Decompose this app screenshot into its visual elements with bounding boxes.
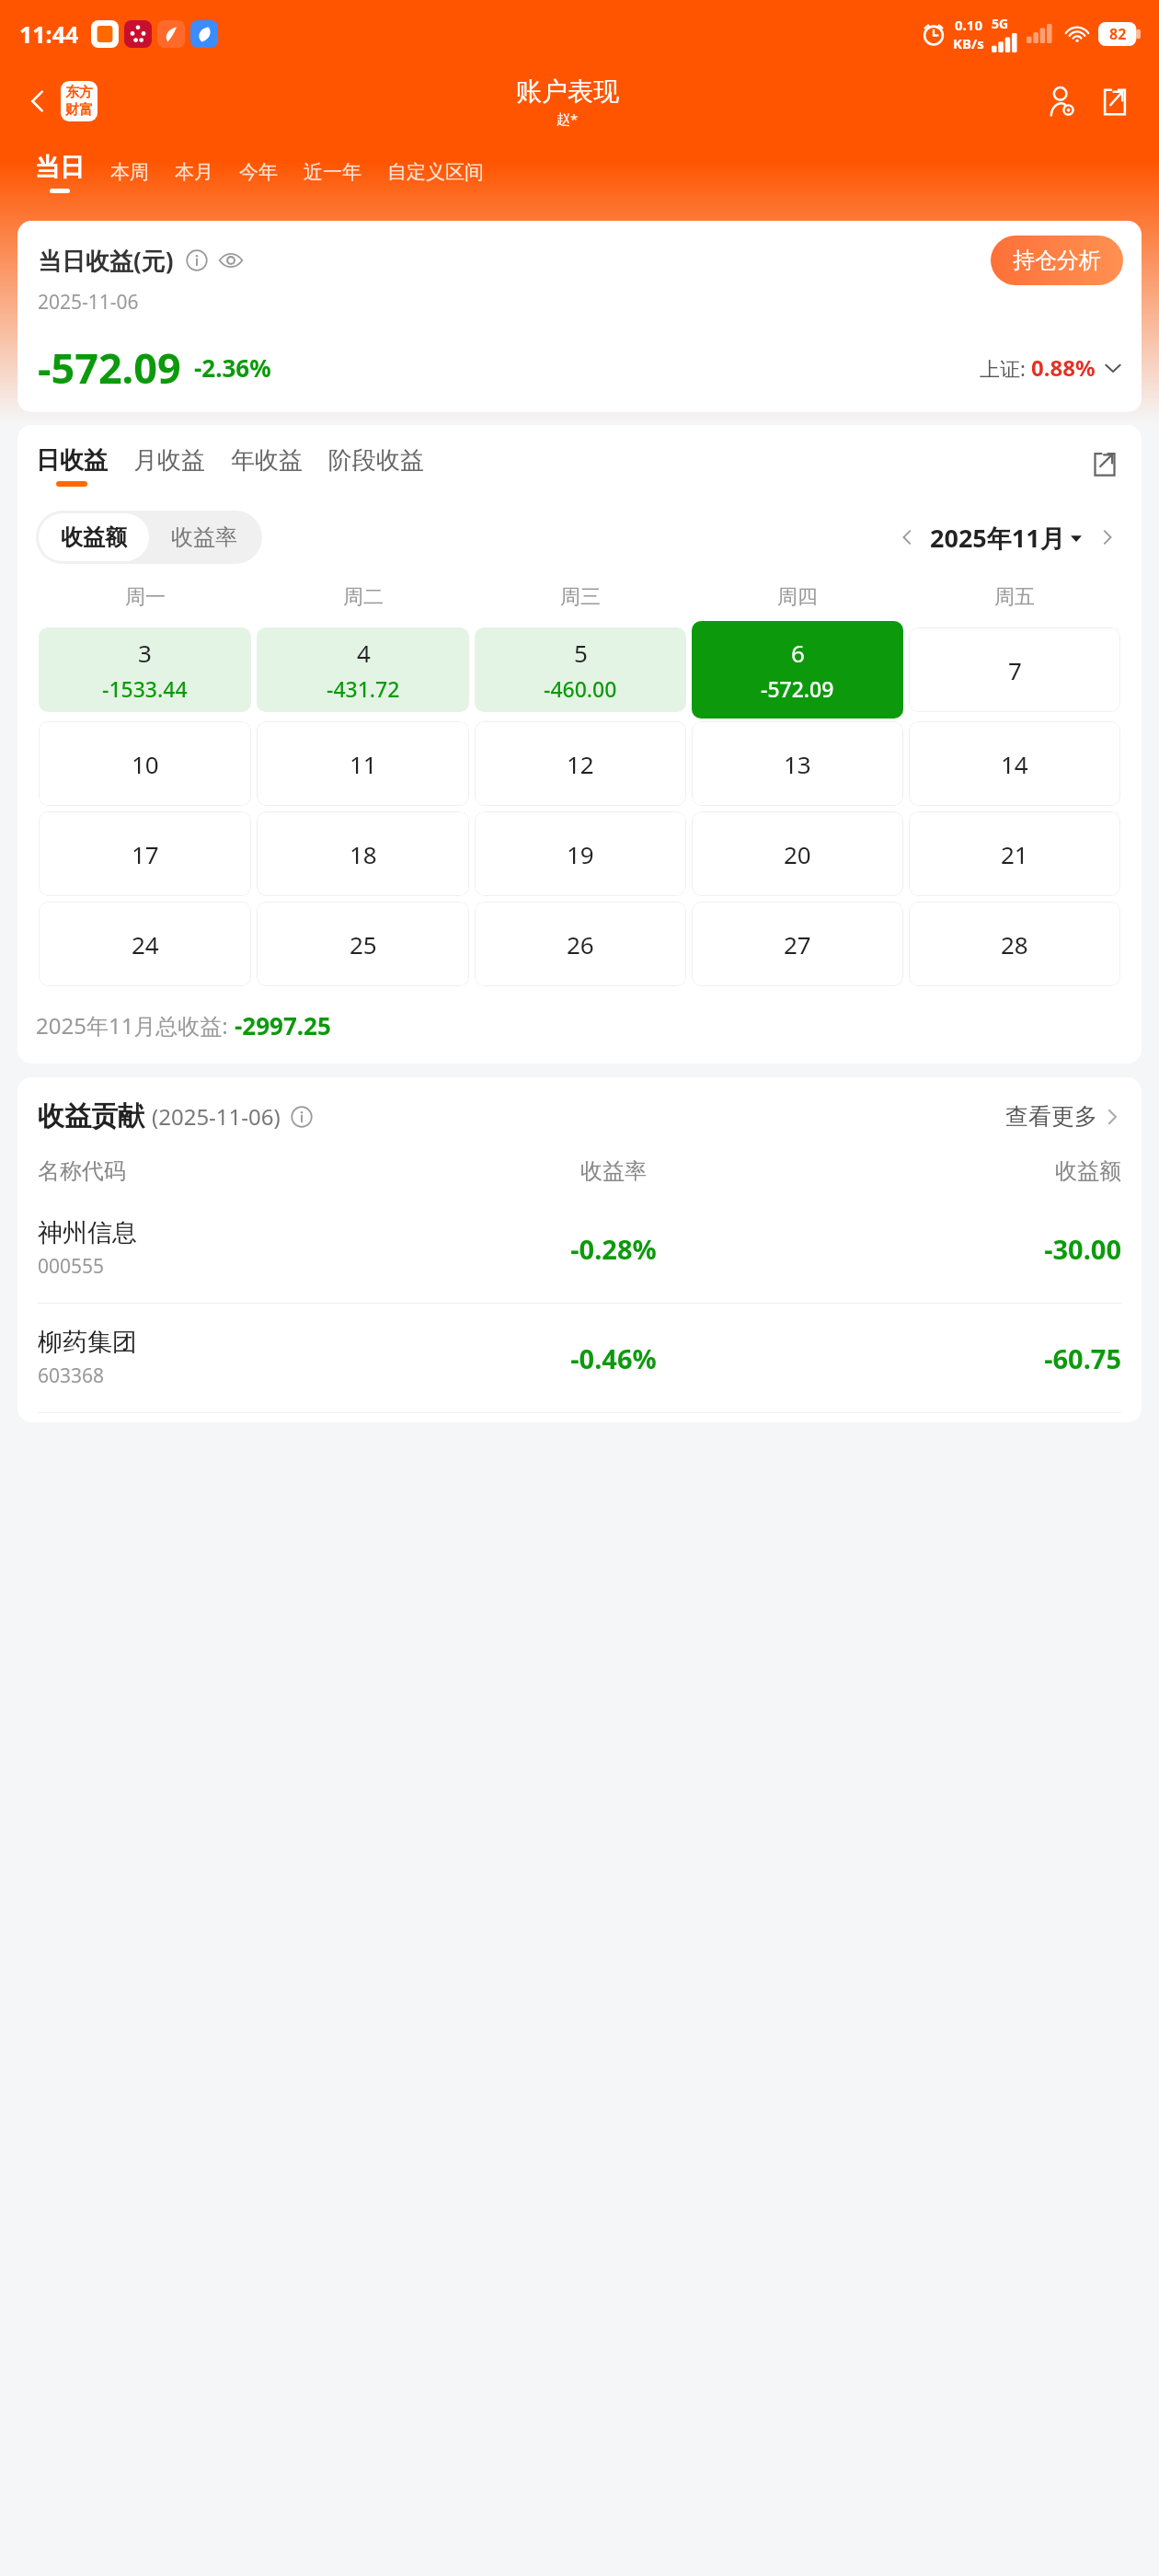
- staticText: 赵*: [557, 109, 579, 128]
- button[interactable]: Account: [1038, 77, 1085, 125]
- button[interactable]: 今年: [226, 160, 291, 184]
- staticText: -572.09: [761, 674, 834, 703]
- staticText: 东方: [65, 84, 93, 101]
- button[interactable]: Share: [1086, 445, 1123, 482]
- button[interactable]: Info: [183, 247, 211, 274]
- staticText: 0.10: [955, 16, 982, 34]
- staticText: KB/s: [953, 34, 984, 52]
- button[interactable]: 神州信息: [38, 1194, 1121, 1303]
- staticText: 周二: [343, 584, 384, 610]
- button[interactable]: 17: [39, 811, 251, 896]
- staticText: 12: [567, 748, 594, 780]
- button[interactable]: 10: [39, 721, 251, 806]
- staticText: 13: [784, 748, 811, 780]
- staticText: 82: [1109, 24, 1127, 44]
- button[interactable]: 27: [692, 902, 903, 986]
- button[interactable]: 18: [257, 811, 469, 896]
- button[interactable]: 月收益: [133, 445, 231, 481]
- staticText: 名称代码: [38, 1157, 444, 1185]
- staticText: 27: [784, 928, 811, 960]
- button[interactable]: 本周: [98, 160, 162, 184]
- staticText: -0.28%: [444, 1231, 783, 1267]
- staticText: 柳药集团: [38, 1327, 137, 1358]
- button[interactable]: 收益额: [39, 513, 149, 561]
- staticText: 19: [567, 838, 594, 870]
- staticText: 持仓分析: [1013, 247, 1101, 274]
- button[interactable]: 当日: [22, 152, 98, 193]
- button[interactable]: Info: [288, 1103, 316, 1131]
- button[interactable]: Toggle visibility: [216, 246, 246, 275]
- button[interactable]: 自定义区间: [374, 160, 497, 184]
- button[interactable]: 25: [257, 902, 469, 986]
- button[interactable]: 20: [692, 811, 903, 896]
- button[interactable]: 本月: [162, 160, 226, 184]
- button[interactable]: 26: [475, 902, 686, 986]
- staticText: 5: [574, 637, 588, 669]
- button[interactable]: 当日收益(元): [17, 221, 1142, 412]
- button[interactable]: 查看更多: [1005, 1102, 1121, 1131]
- button[interactable]: Share: [1091, 77, 1139, 125]
- staticText: 24: [132, 928, 159, 960]
- button[interactable]: 年收益: [231, 445, 328, 481]
- button[interactable]: 东方: [61, 81, 98, 121]
- staticText: -0.46%: [444, 1340, 783, 1376]
- button[interactable]: 6: [692, 621, 903, 719]
- button[interactable]: Next month: [1092, 522, 1123, 553]
- button[interactable]: 上证:: [980, 352, 1123, 383]
- staticText: 自定义区间: [387, 160, 484, 184]
- button[interactable]: 28: [909, 902, 1120, 986]
- staticText: 18: [350, 838, 377, 870]
- staticText: 14: [1001, 748, 1028, 780]
- button[interactable]: Back: [17, 80, 59, 122]
- staticText: 周一: [125, 584, 166, 610]
- staticText: 2025-11-06: [38, 289, 139, 316]
- staticText: 3: [138, 637, 152, 669]
- button[interactable]: 4: [257, 627, 469, 712]
- staticText: -460.00: [544, 674, 617, 703]
- staticText: 7: [1008, 654, 1022, 686]
- staticText: 账户表现: [516, 75, 619, 108]
- button[interactable]: 收益率: [149, 513, 259, 561]
- staticText: 收益贡献: [38, 1099, 144, 1133]
- staticText: 11:44: [19, 18, 79, 50]
- button[interactable]: 5: [475, 627, 686, 712]
- button[interactable]: 19: [475, 811, 686, 896]
- staticText: 查看更多: [1005, 1102, 1097, 1131]
- staticText: -431.72: [327, 674, 400, 703]
- staticText: 25: [350, 928, 377, 960]
- button[interactable]: Previous month: [891, 522, 923, 553]
- staticText: 10: [132, 748, 159, 780]
- staticText: 周四: [777, 584, 818, 610]
- button[interactable]: 柳药集团: [38, 1304, 1121, 1412]
- staticText: 17: [132, 838, 159, 870]
- staticText: 4: [357, 637, 371, 669]
- staticText: -30.00: [783, 1231, 1121, 1267]
- button[interactable]: 3: [39, 627, 251, 712]
- staticText: 28: [1001, 928, 1028, 960]
- button[interactable]: 阶段收益: [328, 445, 450, 481]
- button[interactable]: 日收益: [36, 445, 133, 487]
- button[interactable]: 12: [475, 721, 686, 806]
- staticText: 本月: [175, 160, 213, 184]
- staticText: 11: [350, 748, 377, 780]
- button[interactable]: 24: [39, 902, 251, 986]
- button[interactable]: 2025年11月: [930, 521, 1083, 555]
- staticText: 当日: [35, 152, 85, 183]
- staticText: 年收益: [231, 445, 303, 476]
- button[interactable]: 近一年: [291, 160, 374, 184]
- staticText: 6: [791, 637, 805, 669]
- staticText: 收益率: [171, 523, 237, 551]
- button[interactable]: 13: [692, 721, 903, 806]
- button[interactable]: 14: [909, 721, 1120, 806]
- staticText: 2025年11月: [930, 521, 1065, 555]
- button[interactable]: 11: [257, 721, 469, 806]
- button[interactable]: 7: [909, 627, 1120, 712]
- button[interactable]: 21: [909, 811, 1120, 896]
- staticText: 0.88%: [1031, 352, 1096, 383]
- button[interactable]: 持仓分析: [991, 236, 1123, 285]
- staticText: -2.36%: [194, 351, 271, 384]
- staticText: 2025年11月总收益:: [36, 1010, 235, 1041]
- staticText: 21: [1001, 838, 1028, 870]
- staticText: 26: [567, 928, 594, 960]
- staticText: 神州信息: [38, 1217, 137, 1248]
